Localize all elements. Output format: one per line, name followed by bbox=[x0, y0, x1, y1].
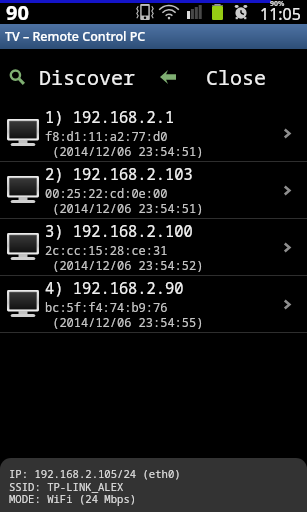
staticText: TV – Remote Control PC bbox=[5, 28, 146, 45]
button[interactable]: 2) 192.168.2.103 bbox=[0, 162, 307, 219]
staticText: (2014/12/06 23:54:51) bbox=[45, 143, 204, 159]
staticText: 90% bbox=[270, 0, 285, 9]
staticText: 2c:cc:15:28:ce:31 bbox=[45, 242, 168, 258]
staticText: 00:25:22:cd:0e:00 bbox=[45, 185, 168, 201]
staticText: 90 bbox=[6, 0, 29, 23]
staticText: SSID: TP-LINK_ALEX bbox=[9, 480, 124, 494]
staticText: 3) 192.168.2.100 bbox=[45, 221, 193, 242]
staticText: 1) 192.168.2.1 bbox=[45, 107, 175, 128]
button[interactable]: Close bbox=[153, 49, 307, 105]
button[interactable]: 4) 192.168.2.90 bbox=[0, 276, 307, 333]
staticText: 2) 192.168.2.103 bbox=[45, 164, 193, 185]
staticText: f8:d1:11:a2:77:d0 bbox=[45, 128, 168, 144]
staticText: bc:5f:f4:74:b9:76 bbox=[45, 299, 168, 315]
staticText: (2014/12/06 23:54:55) bbox=[45, 314, 204, 330]
button[interactable]: 3) 192.168.2.100 bbox=[0, 219, 307, 276]
button[interactable]: Discover bbox=[0, 49, 153, 105]
staticText: MODE: WiFi (24 Mbps) bbox=[9, 492, 137, 506]
staticText: IP: 192.168.2.105/24 (eth0) bbox=[9, 467, 181, 481]
button[interactable]: 1) 192.168.2.1 bbox=[0, 105, 307, 162]
staticText: 11:05 bbox=[260, 3, 301, 25]
staticText: Close bbox=[206, 64, 266, 91]
staticText: (2014/12/06 23:54:52) bbox=[45, 257, 204, 273]
staticText: 4) 192.168.2.90 bbox=[45, 278, 184, 299]
staticText: (2014/12/06 23:54:51) bbox=[45, 200, 204, 216]
staticText: Discover bbox=[39, 64, 135, 91]
